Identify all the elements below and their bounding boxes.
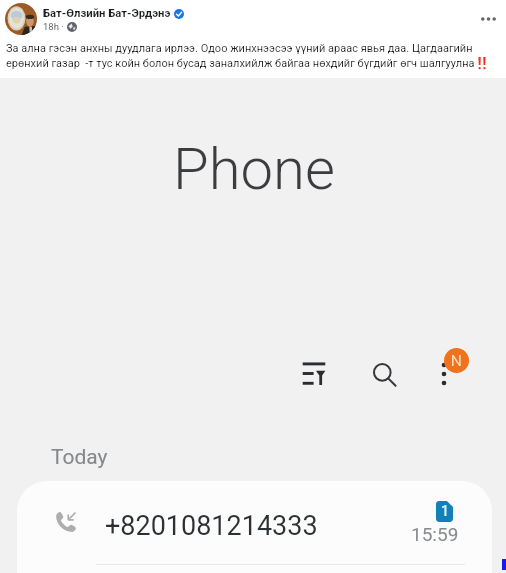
staticText: Phone bbox=[173, 135, 335, 203]
staticText: 15:59 bbox=[411, 523, 459, 545]
button[interactable]: Account bbox=[444, 348, 469, 373]
button[interactable]: Sort and filter bbox=[292, 352, 336, 396]
staticText: Today bbox=[51, 445, 108, 470]
staticText: +8201081214333 bbox=[105, 510, 318, 542]
button[interactable]: Search bbox=[363, 353, 407, 397]
button[interactable]: Бат-Өлзийн Бат-Эрдэнэ bbox=[43, 7, 470, 32]
button[interactable]: More options bbox=[470, 0, 506, 38]
staticText: За ална гэсэн анхны дуудлага ирлээ. Одоо… bbox=[6, 42, 501, 70]
staticText: 18h · bbox=[43, 21, 64, 32]
button[interactable]: +8201081214333 bbox=[17, 481, 492, 565]
staticText: 1 bbox=[441, 503, 449, 519]
staticText: Бат-Өлзийн Бат-Эрдэнэ bbox=[43, 7, 171, 20]
button[interactable]: Profile photo bbox=[5, 3, 37, 35]
staticText: N bbox=[451, 352, 462, 370]
button[interactable]: More options bbox=[422, 352, 466, 396]
